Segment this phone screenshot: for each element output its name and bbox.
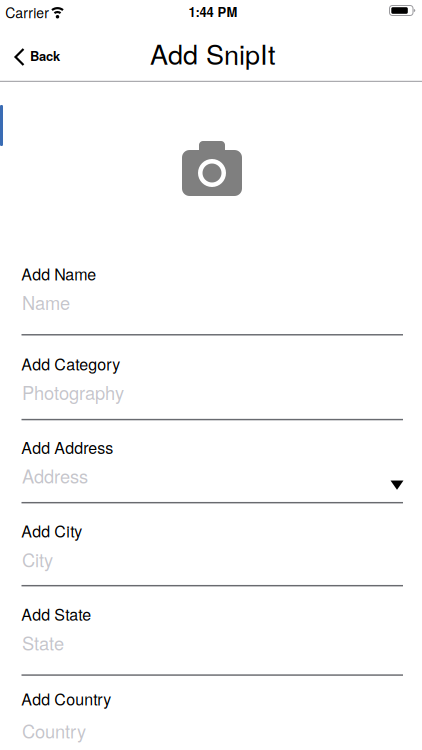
staticText: Name <box>22 289 70 315</box>
button[interactable]: City <box>21 546 403 586</box>
button[interactable]: Photography <box>21 379 403 420</box>
staticText: Add City <box>21 519 82 542</box>
button[interactable]: Back <box>15 45 60 69</box>
staticText: Add Category <box>21 352 120 375</box>
staticText: Country <box>22 718 86 744</box>
staticText: 1:44 PM <box>188 2 237 21</box>
button[interactable]: Address <box>21 462 403 503</box>
staticText: Add SnipIt <box>150 34 276 72</box>
staticText: Back <box>30 46 60 65</box>
button[interactable]: Name <box>21 289 403 335</box>
staticText: State <box>22 629 64 656</box>
button[interactable]: Country <box>21 718 403 750</box>
staticText: Add Name <box>21 262 96 285</box>
staticText: City <box>22 546 53 572</box>
button[interactable]: State <box>21 629 403 675</box>
staticText: Address <box>22 462 88 489</box>
staticText: Add Address <box>21 435 113 458</box>
staticText: Carrier <box>5 2 49 22</box>
staticText: Add Country <box>21 687 111 710</box>
staticText: Photography <box>22 379 124 405</box>
button[interactable]: Add Photo <box>180 140 244 196</box>
staticText: Add State <box>21 602 91 625</box>
